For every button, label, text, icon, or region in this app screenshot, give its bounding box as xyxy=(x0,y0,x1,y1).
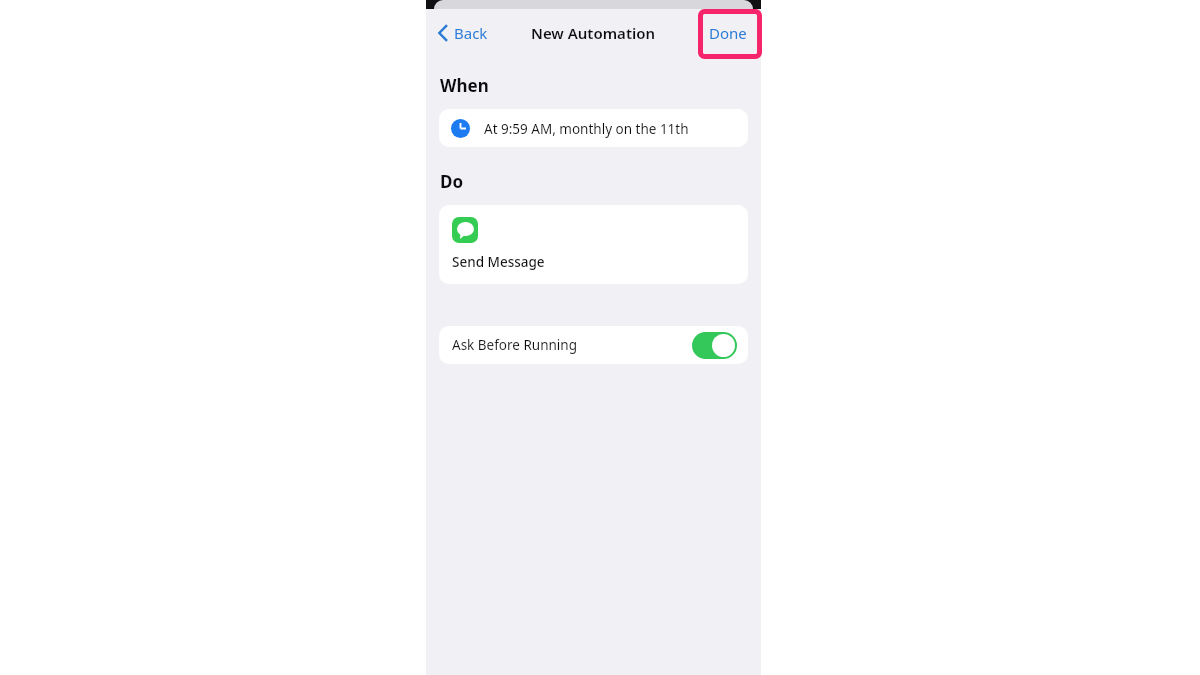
staticText: New Automation xyxy=(531,23,656,43)
staticText: Done xyxy=(709,23,747,43)
staticText: Ask Before Running xyxy=(452,336,577,354)
button[interactable]: Ask Before Running xyxy=(439,326,748,364)
button[interactable]: Done xyxy=(705,17,751,49)
staticText: Send Message xyxy=(452,253,545,271)
staticText: At 9:59 AM, monthly on the 11th xyxy=(484,120,689,138)
button[interactable]: At 9:59 AM, monthly on the 11th xyxy=(439,109,748,147)
staticText: Back xyxy=(454,23,488,43)
staticText: Do xyxy=(440,170,464,193)
button[interactable]: Send Message xyxy=(439,205,748,284)
button[interactable]: Ask Before Running toggle, on xyxy=(692,332,737,359)
staticText: When xyxy=(440,74,489,97)
button[interactable]: Back xyxy=(434,17,492,49)
